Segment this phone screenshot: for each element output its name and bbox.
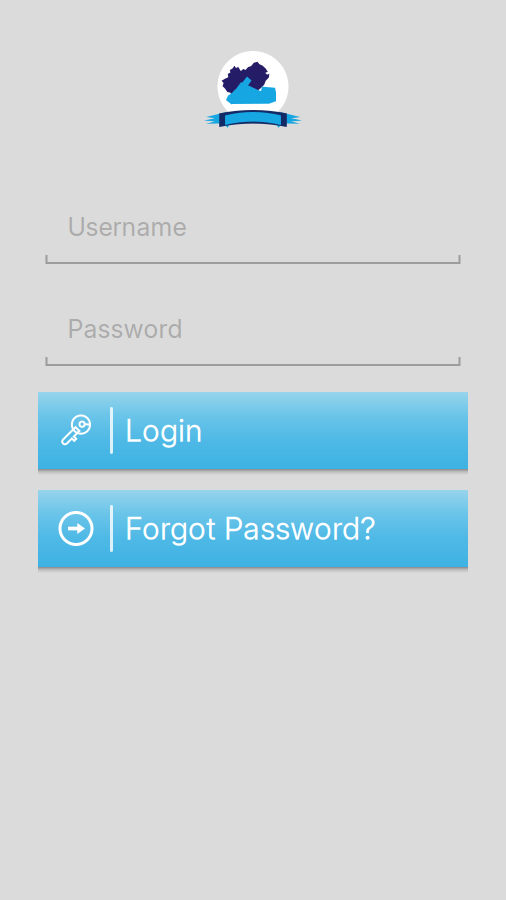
button[interactable]: Password (45, 310, 460, 366)
button[interactable]: Forgot Password? (38, 490, 468, 573)
button[interactable]: Username (45, 208, 460, 264)
staticText: Forgot Password? (125, 510, 376, 547)
button[interactable]: Login (38, 392, 468, 475)
staticText: Password (67, 314, 182, 344)
staticText: Login (125, 412, 202, 449)
staticText: Username (67, 212, 186, 242)
